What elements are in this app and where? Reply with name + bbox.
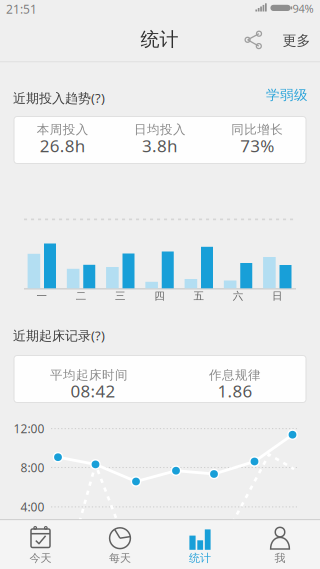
staticText: 08:42	[70, 379, 115, 402]
staticText: 94%	[292, 1, 313, 16]
staticText: 更多	[282, 32, 310, 49]
staticText: 五	[193, 289, 204, 303]
staticText: 今天	[29, 551, 51, 565]
button[interactable]: 每天	[80, 520, 160, 569]
button[interactable]: 分享	[230, 24, 274, 56]
staticText: 1.86	[217, 379, 252, 402]
staticText: 平均起床时间	[50, 367, 128, 383]
staticText: 近期起床记录(?)	[13, 327, 105, 344]
staticText: 12:00	[13, 420, 44, 437]
staticText: 日	[272, 289, 283, 303]
staticText: 统计	[140, 27, 178, 51]
button[interactable]: 我	[240, 520, 320, 569]
button[interactable]: 学弱级	[266, 86, 308, 103]
staticText: 近期投入趋势(?)	[13, 89, 105, 107]
staticText: 统计	[189, 551, 211, 565]
staticText: 同比增长	[231, 122, 283, 137]
staticText: 六	[233, 289, 244, 303]
button[interactable]: 统计	[160, 520, 240, 569]
button[interactable]: 更多	[282, 32, 310, 49]
staticText: 二	[76, 289, 87, 303]
staticText: 每天	[109, 551, 131, 565]
staticText: 一	[36, 289, 47, 303]
staticText: 73%	[240, 134, 274, 157]
staticText: 我	[274, 551, 285, 565]
staticText: 日均投入	[134, 122, 186, 137]
button[interactable]: 今天	[0, 520, 80, 569]
staticText: 4:00	[20, 499, 44, 515]
staticText: 本周投入	[37, 122, 89, 137]
staticText: 3.8h	[142, 134, 178, 157]
staticText: 四	[154, 289, 165, 303]
staticText: 21:51	[6, 1, 37, 17]
staticText: 学弱级	[266, 86, 308, 103]
staticText: 8:00	[20, 459, 44, 476]
staticText: 作息规律	[209, 367, 261, 383]
staticText: 三	[115, 289, 126, 303]
staticText: 26.8h	[40, 134, 86, 157]
